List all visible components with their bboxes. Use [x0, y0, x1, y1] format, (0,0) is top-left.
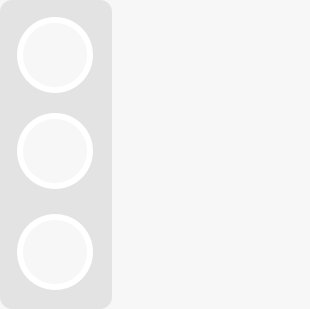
- button[interactable]: Add workspace: [17, 214, 93, 290]
- button[interactable]: Profile: [17, 17, 93, 93]
- button[interactable]: Workspace: [17, 113, 93, 189]
